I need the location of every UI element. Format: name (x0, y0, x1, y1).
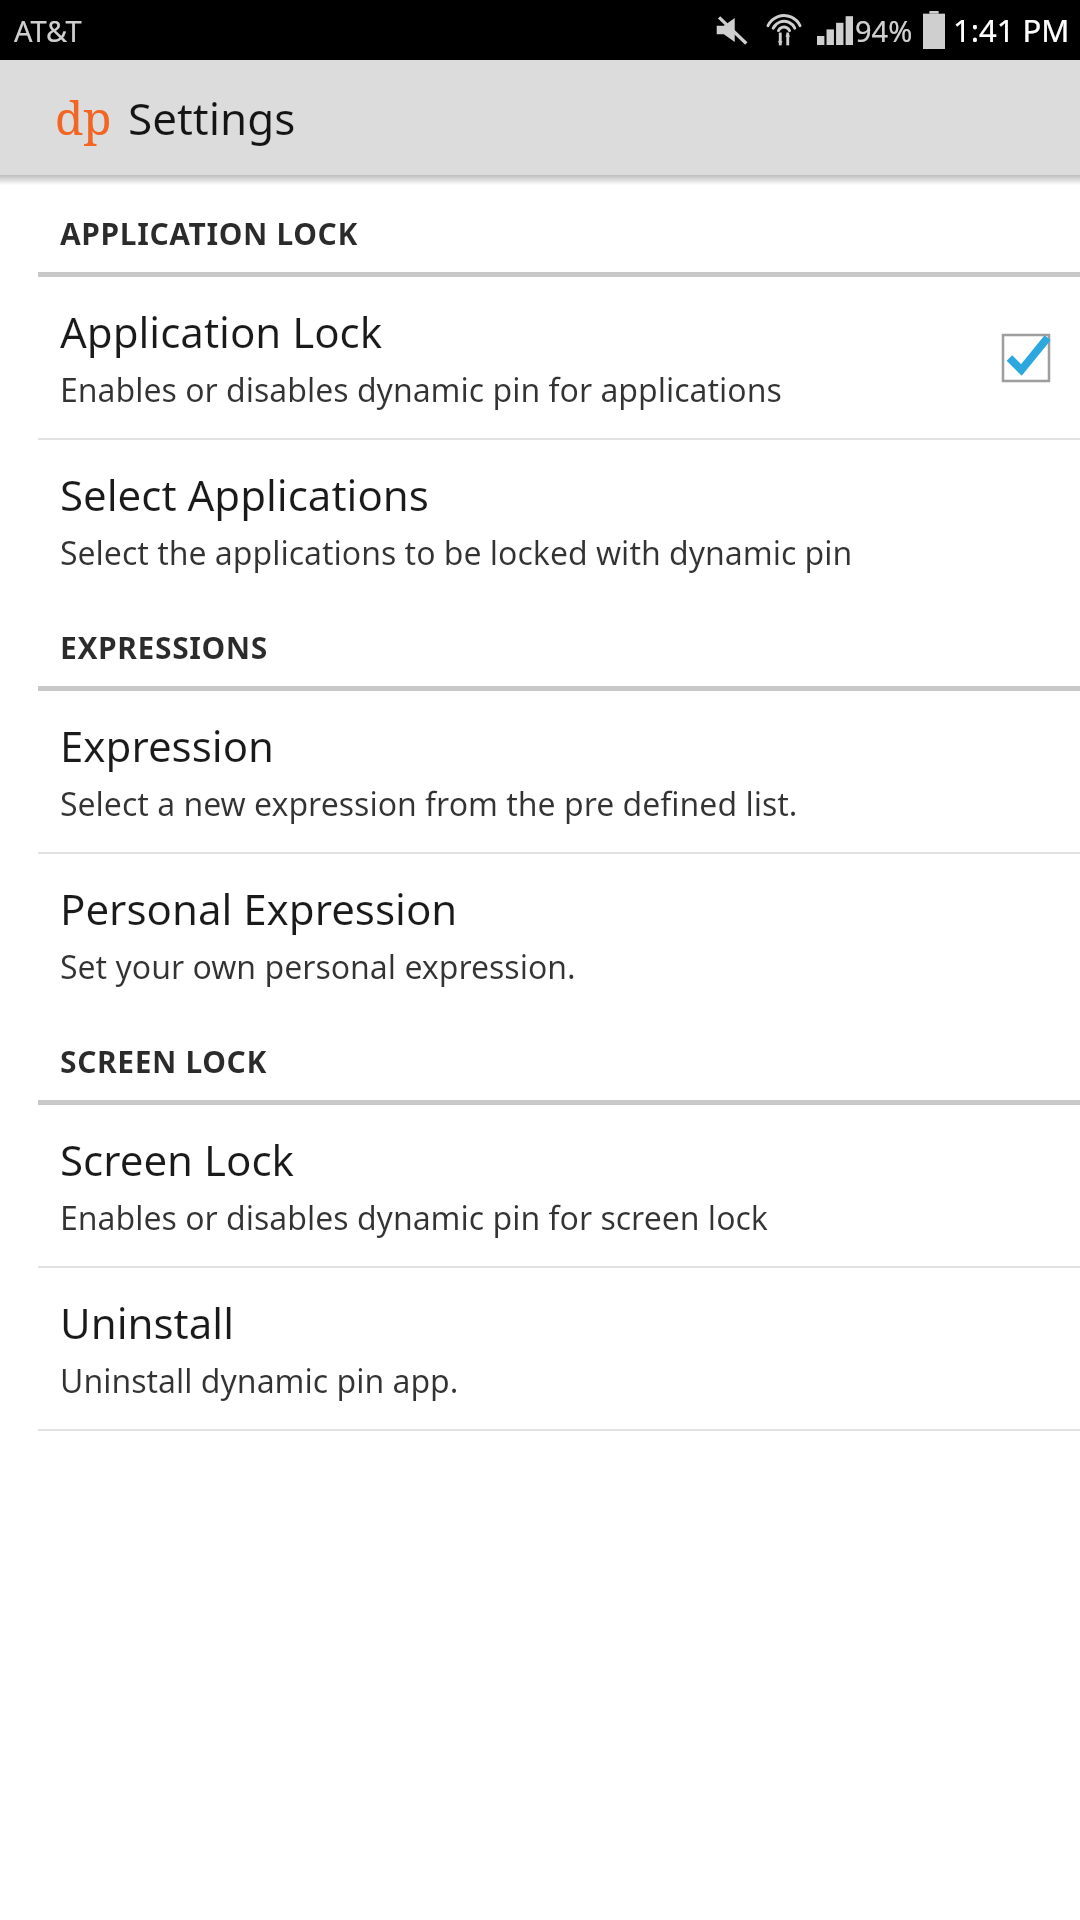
staticText: Personal Expression (60, 880, 458, 937)
staticText: AT&T (14, 11, 82, 50)
staticText: APPLICATION LOCK (60, 213, 358, 254)
staticText: SCREEN LOCK (60, 1041, 267, 1082)
button[interactable]: Application Lock enabled (1000, 332, 1052, 384)
staticText: Uninstall (60, 1294, 234, 1351)
staticText: Settings (128, 88, 296, 148)
button[interactable]: Expression (0, 691, 1080, 852)
button[interactable]: Uninstall (0, 1268, 1080, 1429)
staticText: Application Lock (60, 303, 383, 360)
button[interactable]: Personal Expression (0, 854, 1080, 1015)
button[interactable]: Application Lock (0, 277, 1080, 438)
staticText: 1:41 PM (953, 9, 1070, 51)
staticText: Select Applications (60, 466, 429, 523)
staticText: Uninstall dynamic pin app. (60, 1359, 459, 1403)
staticText: Screen Lock (60, 1131, 294, 1188)
staticText: Expression (60, 717, 275, 774)
staticText: Enables or disables dynamic pin for scre… (60, 1196, 768, 1240)
button[interactable]: Select Applications (0, 440, 1080, 601)
staticText: Select a new expression from the pre def… (60, 782, 798, 826)
staticText: 94% (855, 11, 913, 50)
staticText: Select the applications to be locked wit… (60, 531, 853, 575)
button[interactable]: Screen Lock (0, 1105, 1080, 1266)
staticText: dp (55, 86, 112, 149)
staticText: EXPRESSIONS (60, 627, 268, 668)
staticText: Enables or disables dynamic pin for appl… (60, 368, 782, 412)
staticText: Set your own personal expression. (60, 945, 576, 989)
